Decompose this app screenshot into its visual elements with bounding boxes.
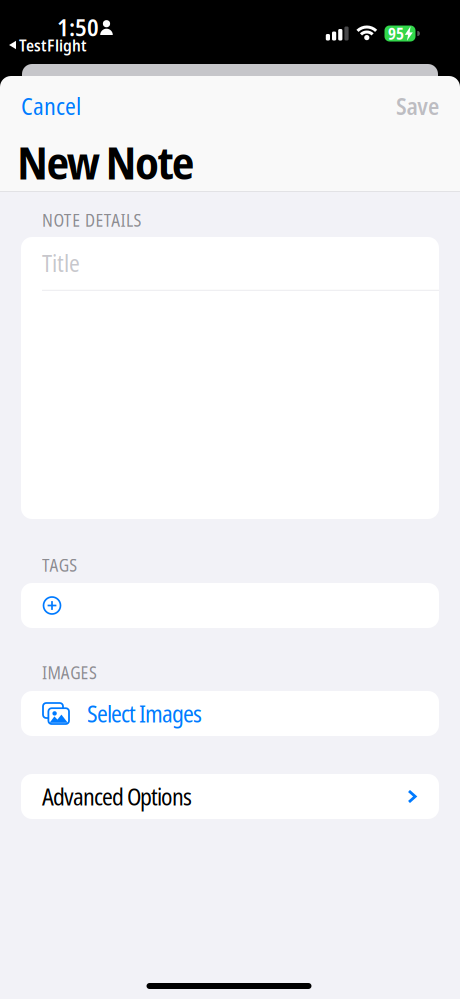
staticText: Advanced Options <box>42 781 192 812</box>
staticText: IMAGES <box>42 661 97 684</box>
button[interactable]: Back to TestFlight <box>9 34 87 56</box>
staticText: TAGS <box>42 553 77 577</box>
staticText: Title <box>42 247 80 279</box>
button[interactable]: Advanced Options <box>21 774 439 819</box>
staticText: New Note <box>17 131 195 193</box>
staticText: Select Images <box>87 698 202 729</box>
staticText: Cancel <box>21 90 81 122</box>
button[interactable]: Cancel <box>21 90 81 122</box>
button[interactable]: Save <box>396 90 439 122</box>
button[interactable]: Add Tag <box>21 583 439 628</box>
button[interactable]: Select Images <box>21 691 439 736</box>
staticText: 95 <box>388 23 404 44</box>
staticText: TestFlight <box>19 34 87 56</box>
staticText: NOTE DETAILS <box>42 208 141 232</box>
staticText: Save <box>396 90 439 122</box>
staticText: 1:50 <box>57 11 99 43</box>
